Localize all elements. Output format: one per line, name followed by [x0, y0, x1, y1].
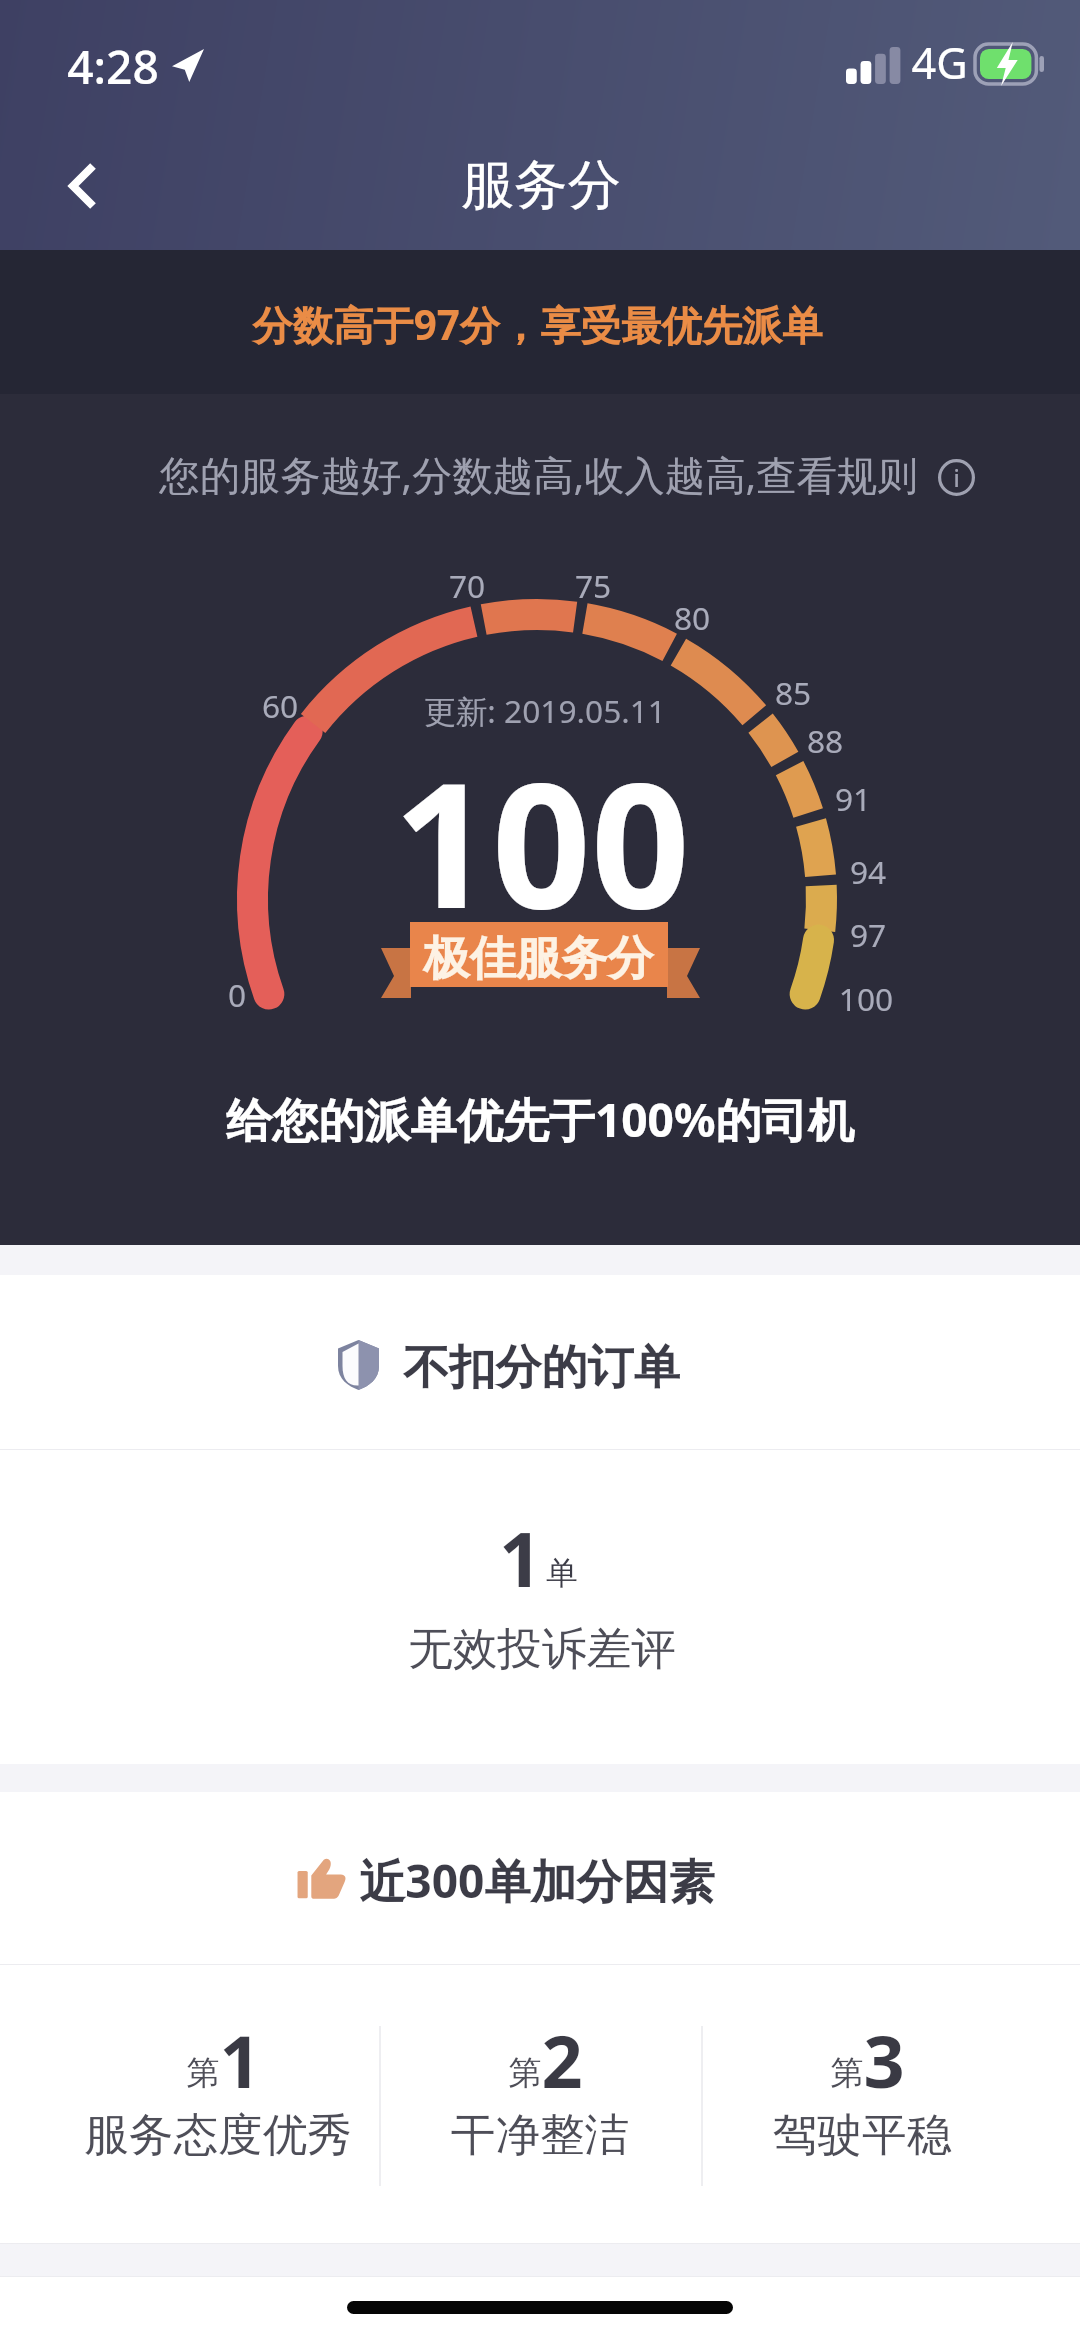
staticText: 给您的派单优先于100%的司机 — [226, 1088, 854, 1151]
staticText: 80 — [652, 596, 732, 639]
staticText: 不扣分的订单 — [403, 1339, 680, 1397]
staticText: 驾驶平稳 — [702, 2107, 1022, 2163]
staticText: 94 — [828, 850, 908, 893]
staticText: 无效投诉差评 — [408, 1621, 676, 1677]
staticText: 第 — [508, 2052, 542, 2094]
staticText: 干净整洁 — [380, 2107, 700, 2163]
button[interactable]: 服务态度优秀 — [58, 2107, 378, 2163]
staticText: 1 — [219, 2011, 261, 2109]
staticText: 97 — [828, 913, 908, 956]
staticText: 服务分 — [461, 152, 621, 219]
staticText: 75 — [553, 564, 633, 607]
staticText: 60 — [240, 684, 320, 727]
button[interactable]: Back — [25, 130, 137, 242]
staticText: 0 — [197, 973, 277, 1016]
staticText: 2 — [541, 2011, 583, 2109]
staticText: 极佳服务分 — [423, 930, 654, 988]
staticText: 4:28 — [67, 35, 159, 98]
staticText: 更新: 2019.05.11 — [424, 689, 666, 732]
button[interactable]: 干净整洁 — [380, 2107, 700, 2163]
staticText: 91 — [813, 777, 893, 820]
staticText: 100 — [393, 723, 690, 958]
staticText: 1 — [499, 1507, 542, 1609]
button[interactable]: 驾驶平稳 — [702, 2107, 1022, 2163]
staticText: 4G — [911, 33, 968, 92]
staticText: 85 — [753, 671, 833, 714]
staticText: 近300单加分因素 — [359, 1849, 715, 1912]
staticText: 第 — [186, 2052, 220, 2094]
button[interactable]: 不扣分的订单 — [0, 1275, 1080, 1449]
staticText: 3 — [863, 2011, 905, 2109]
staticText: 单 — [546, 1553, 578, 1593]
button[interactable]: View rules — [930, 451, 982, 503]
staticText: 100 — [826, 977, 906, 1020]
staticText: 70 — [427, 564, 507, 607]
staticText: 88 — [785, 719, 865, 762]
staticText: 您的服务越好,分数越高,收入越高,查看规则 — [159, 447, 918, 502]
button[interactable]: 近300单加分因素 — [0, 1792, 1080, 1964]
staticText: i — [953, 462, 960, 493]
staticText: 服务态度优秀 — [58, 2107, 378, 2163]
staticText: 第 — [830, 2052, 864, 2094]
staticText: 分数高于97分，享受最优先派单 — [252, 297, 823, 352]
